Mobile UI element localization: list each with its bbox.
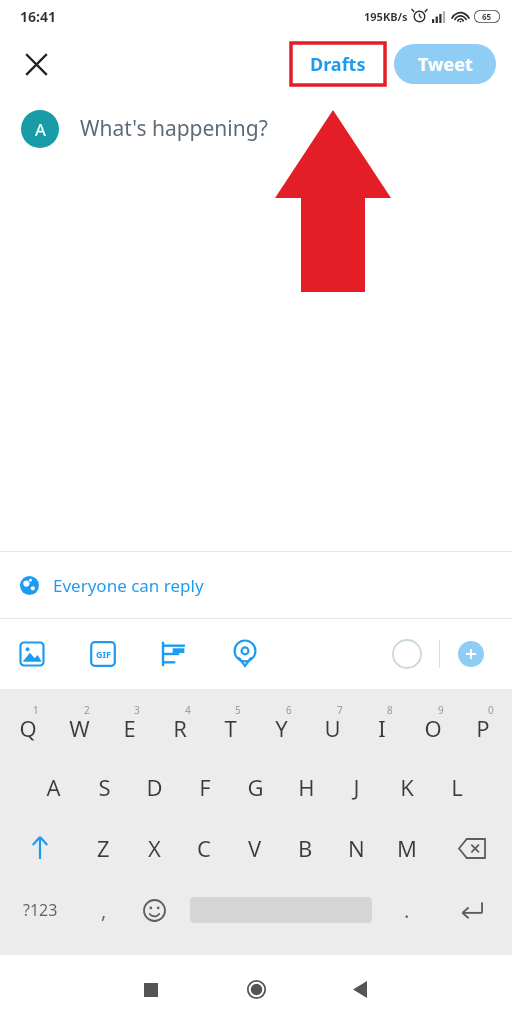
staticText: 6: [286, 703, 292, 717]
staticText: What's happening?: [80, 114, 268, 143]
button[interactable]: W: [57, 699, 101, 757]
staticText: 16:41: [20, 7, 56, 26]
button[interactable]: D: [132, 757, 176, 817]
button[interactable]: [16, 817, 64, 879]
button[interactable]: Add tweet: [452, 635, 490, 673]
button[interactable]: T: [208, 699, 252, 757]
button[interactable]: A: [31, 757, 75, 817]
button[interactable]: Tweet: [394, 44, 496, 84]
button[interactable]: F: [183, 757, 227, 817]
button[interactable]: Drafts: [291, 43, 385, 85]
button[interactable]: Character count: [387, 634, 427, 674]
staticText: R: [173, 713, 187, 743]
button[interactable]: N: [332, 817, 380, 879]
staticText: Z: [97, 833, 110, 863]
staticText: 9: [438, 703, 444, 717]
staticText: GIF: [96, 648, 111, 660]
staticText: E: [123, 713, 136, 743]
button[interactable]: H: [284, 757, 328, 817]
button[interactable]: Recent apps: [129, 955, 173, 1024]
staticText: M: [397, 833, 417, 863]
staticText: O: [424, 713, 442, 743]
staticText: G: [247, 772, 264, 802]
button[interactable]: G: [233, 757, 277, 817]
staticText: ,: [101, 897, 107, 924]
button[interactable]: Add location: [223, 632, 267, 676]
staticText: Tweet: [418, 52, 473, 77]
button[interactable]: J: [334, 757, 378, 817]
staticText: B: [298, 833, 313, 863]
staticText: 65: [482, 11, 492, 22]
staticText: Drafts: [310, 52, 366, 77]
button[interactable]: C: [180, 817, 228, 879]
button[interactable]: Add GIF: [81, 632, 125, 676]
button[interactable]: M: [383, 817, 431, 879]
button[interactable]: P: [461, 699, 505, 757]
button[interactable]: Q: [6, 699, 50, 757]
staticText: C: [197, 833, 211, 863]
button[interactable]: ?123: [16, 879, 64, 941]
button[interactable]: K: [385, 757, 429, 817]
staticText: ?123: [23, 899, 58, 921]
staticText: 7: [337, 703, 343, 717]
staticText: Y: [275, 713, 288, 743]
button[interactable]: Back: [338, 955, 382, 1024]
button[interactable]: E: [107, 699, 151, 757]
button[interactable]: Z: [79, 817, 127, 879]
staticText: V: [248, 833, 262, 863]
button[interactable]: L: [435, 757, 479, 817]
button[interactable]: Home: [234, 955, 278, 1024]
button[interactable]: I: [360, 699, 404, 757]
staticText: S: [98, 772, 111, 802]
staticText: 0: [488, 703, 494, 717]
staticText: A: [46, 772, 61, 802]
staticText: A: [35, 118, 46, 141]
staticText: 2: [84, 703, 90, 717]
button[interactable]: O: [411, 699, 455, 757]
button[interactable]: Y: [259, 699, 303, 757]
staticText: D: [146, 772, 163, 802]
staticText: X: [148, 833, 161, 863]
button[interactable]: X: [130, 817, 178, 879]
button[interactable]: Everyone can reply: [0, 552, 512, 618]
button[interactable]: Add poll: [152, 632, 196, 676]
staticText: Everyone can reply: [53, 574, 204, 597]
button[interactable]: A: [21, 110, 59, 148]
staticText: 4: [185, 703, 191, 717]
button[interactable]: S: [82, 757, 126, 817]
button[interactable]: R: [158, 699, 202, 757]
staticText: .: [404, 897, 410, 924]
staticText: W: [69, 713, 90, 743]
staticText: P: [476, 713, 490, 743]
staticText: U: [324, 713, 341, 743]
staticText: 1: [33, 703, 39, 717]
button[interactable]: Add photo: [10, 632, 54, 676]
staticText: F: [199, 772, 211, 802]
staticText: N: [348, 833, 365, 863]
staticText: Q: [19, 713, 37, 743]
button[interactable]: .: [383, 879, 431, 941]
staticText: 3: [134, 703, 140, 717]
staticText: L: [451, 772, 463, 802]
button[interactable]: ,: [80, 879, 128, 941]
staticText: J: [353, 772, 360, 802]
button[interactable]: [448, 879, 496, 941]
staticText: I: [378, 713, 386, 743]
button[interactable]: B: [281, 817, 329, 879]
button[interactable]: [448, 817, 496, 879]
staticText: 5: [235, 703, 241, 717]
staticText: T: [224, 713, 237, 743]
button[interactable]: Close: [14, 42, 58, 86]
staticText: H: [298, 772, 315, 802]
staticText: K: [400, 772, 414, 802]
button[interactable]: U: [310, 699, 354, 757]
staticText: 8: [387, 703, 393, 717]
staticText: 195KB/s: [364, 9, 408, 24]
button[interactable]: V: [231, 817, 279, 879]
button[interactable]: [130, 879, 178, 941]
